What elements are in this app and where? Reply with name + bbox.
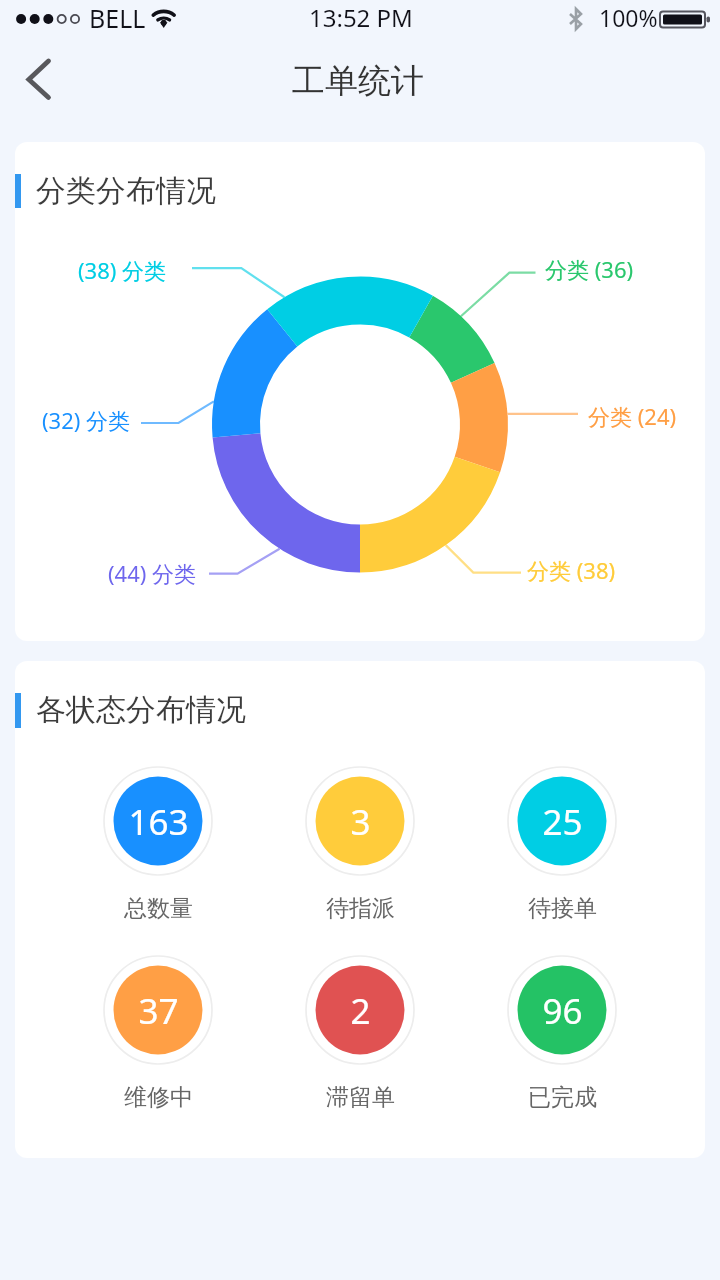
staticText: (44) 分类 [108, 558, 197, 588]
staticText: (32) 分类 [42, 405, 131, 435]
staticText: 分类分布情况 [36, 172, 216, 210]
staticText: 163 [128, 798, 189, 846]
staticText: 分类 (36) [545, 254, 634, 284]
staticText: 总数量 [124, 894, 193, 923]
staticText: 维修中 [124, 1083, 193, 1112]
staticText: 已完成 [528, 1083, 597, 1112]
staticText: 分类 (38) [527, 555, 616, 585]
button[interactable]: 3 [305, 766, 415, 922]
staticText: 3 [350, 798, 371, 846]
staticText: 待接单 [528, 894, 597, 923]
staticText: (38) 分类 [78, 255, 167, 285]
button[interactable]: 163 [103, 766, 213, 922]
staticText: 96 [542, 987, 583, 1035]
staticText: 工单统计 [292, 60, 424, 102]
staticText: 2 [350, 987, 371, 1035]
button[interactable]: 25 [507, 766, 617, 922]
button[interactable]: 37 [103, 955, 213, 1111]
staticText: 滞留单 [326, 1083, 395, 1112]
staticText: 25 [542, 798, 583, 846]
button[interactable]: 96 [507, 955, 617, 1111]
button[interactable]: 2 [305, 955, 415, 1111]
button[interactable]: Back [0, 45, 76, 125]
staticText: 13:52 PM [309, 1, 413, 34]
staticText: 37 [138, 987, 179, 1035]
staticText: 分类 (24) [588, 401, 677, 431]
staticText: BELL [89, 1, 146, 35]
staticText: 各状态分布情况 [36, 691, 246, 729]
staticText: 待指派 [326, 894, 395, 923]
staticText: 100% [599, 2, 658, 33]
